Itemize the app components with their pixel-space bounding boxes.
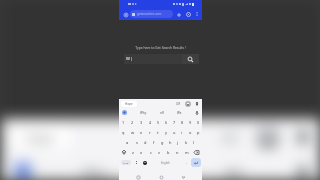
button[interactable]: 1 <box>119 117 128 127</box>
button[interactable]: Voice input <box>287 157 314 180</box>
button[interactable]: n <box>173 147 182 157</box>
button[interactable]: Enter <box>191 158 201 167</box>
button[interactable]: t <box>154 127 162 137</box>
button[interactable]: Back <box>179 174 187 180</box>
button[interactable]: Hope <box>9 126 71 150</box>
button[interactable]: p <box>194 127 202 137</box>
button[interactable]: Tabs <box>184 10 193 19</box>
staticText: 1 <box>122 120 125 125</box>
staticText: 3 <box>140 120 143 125</box>
button[interactable]: Home <box>121 10 130 19</box>
button[interactable]: Home <box>157 174 165 180</box>
staticText: We <box>226 165 245 180</box>
staticText: u <box>173 130 176 135</box>
staticText: z <box>132 150 134 155</box>
button[interactable]: Hope <box>121 101 137 107</box>
button[interactable]: W| <box>124 54 182 64</box>
button[interactable]: Voice input <box>193 109 200 116</box>
button[interactable]: q <box>119 127 128 137</box>
staticText: s <box>136 140 138 145</box>
button[interactable]: s <box>132 137 141 147</box>
button[interactable]: Google <box>9 157 36 180</box>
button[interactable]: m <box>182 147 191 157</box>
button[interactable]: 4 <box>146 117 154 127</box>
staticText: j <box>177 140 179 145</box>
staticText: 2 <box>131 120 134 125</box>
button[interactable]: a <box>123 137 132 147</box>
button[interactable]: 0 <box>194 117 202 127</box>
button[interactable]: k <box>182 137 190 147</box>
button[interactable]: Comma <box>132 157 140 168</box>
button[interactable]: u <box>170 127 178 137</box>
staticText: c <box>150 150 152 155</box>
button[interactable]: d <box>141 137 150 147</box>
staticText: getsearchre.com <box>137 12 162 16</box>
button[interactable]: Location <box>193 100 200 107</box>
button[interactable]: z <box>129 147 137 157</box>
staticText: . <box>186 160 188 165</box>
button[interactable]: More options <box>193 10 201 18</box>
button[interactable]: GIF <box>175 100 182 107</box>
button[interactable]: b <box>164 147 173 157</box>
button[interactable]: 5 <box>154 117 162 127</box>
staticText: English <box>161 161 170 165</box>
button[interactable]: Search <box>182 54 199 64</box>
staticText: r <box>149 130 151 135</box>
staticText: 5 <box>157 120 160 125</box>
button[interactable]: i <box>178 127 186 137</box>
button[interactable]: e <box>137 127 146 137</box>
button[interactable]: g <box>158 137 166 147</box>
button[interactable]: New tab <box>174 10 183 19</box>
button[interactable]: x <box>137 147 146 157</box>
button[interactable]: 8 <box>178 117 186 127</box>
staticText: 4 <box>149 120 152 125</box>
button[interactable]: c <box>146 147 155 157</box>
staticText: Hope <box>125 102 133 106</box>
button[interactable]: Emoji <box>140 157 149 168</box>
button[interactable]: ?123 <box>119 157 132 168</box>
button[interactable]: Shift <box>119 147 129 157</box>
staticText: f <box>153 140 155 145</box>
button[interactable]: o <box>186 127 194 137</box>
button[interactable]: w <box>128 127 137 137</box>
button[interactable]: l <box>190 137 198 147</box>
staticText: Why <box>83 165 110 180</box>
button[interactable]: Google <box>121 109 128 116</box>
button[interactable]: GIF <box>218 123 245 150</box>
button[interactable]: h <box>166 137 174 147</box>
button[interactable]: Recents <box>134 174 142 180</box>
staticText: n <box>176 150 179 155</box>
button[interactable]: j <box>174 137 182 147</box>
staticText: y <box>165 130 168 135</box>
button[interactable]: Location <box>287 123 314 150</box>
button[interactable]: 2 <box>128 117 137 127</box>
staticText: Why <box>140 111 147 115</box>
button[interactable]: Clipboard <box>184 100 191 107</box>
button[interactable]: getsearchre.com <box>130 10 173 18</box>
staticText: o <box>189 130 192 135</box>
button[interactable]: r <box>146 127 154 137</box>
button[interactable]: 3 <box>137 117 146 127</box>
staticText: e <box>140 130 143 135</box>
staticText: 7 <box>173 120 176 125</box>
staticText: h <box>169 140 172 145</box>
staticText: i <box>181 130 183 135</box>
staticText: Hope <box>25 130 56 146</box>
staticText: GIF <box>176 102 181 106</box>
staticText: v <box>158 150 161 155</box>
staticText: off <box>160 111 164 115</box>
button[interactable]: v <box>155 147 164 157</box>
button[interactable]: y <box>162 127 170 137</box>
staticText: l <box>193 140 195 145</box>
button[interactable]: 6 <box>162 117 170 127</box>
button[interactable]: Clipboard <box>253 123 280 150</box>
button[interactable]: Backspace <box>191 147 202 157</box>
staticText: q <box>122 130 125 135</box>
button[interactable]: 7 <box>170 117 178 127</box>
button[interactable]: 9 <box>186 117 194 127</box>
staticText: off <box>160 165 175 180</box>
button[interactable]: Space <box>149 157 182 168</box>
button[interactable]: f <box>150 137 158 147</box>
